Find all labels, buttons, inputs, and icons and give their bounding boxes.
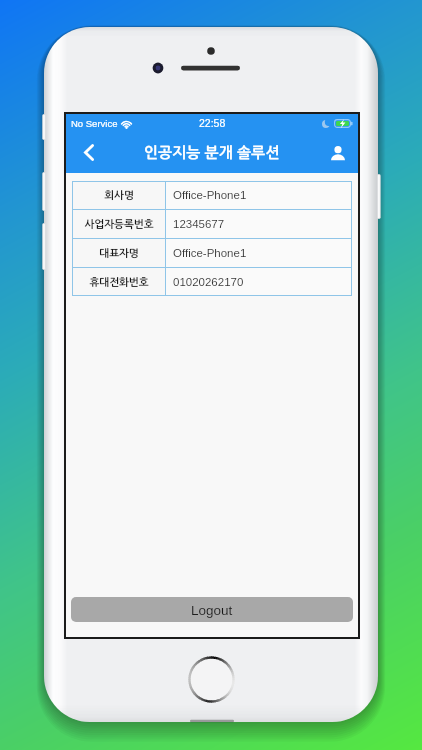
staticText: Office-Phone1 — [173, 247, 247, 260]
staticText: 회사명 — [104, 190, 134, 200]
staticText: 12345677 — [173, 218, 225, 231]
button[interactable]: Back — [66, 132, 104, 173]
staticText: 인공지능 분개 솔루션 — [144, 145, 280, 160]
staticText: Logout — [191, 603, 233, 618]
staticText: 휴대전화번호 — [89, 277, 149, 287]
staticText: 22:58 — [199, 117, 226, 129]
button[interactable]: 대표자명 — [72, 239, 352, 267]
button[interactable]: 회사명 — [72, 181, 352, 209]
staticText: No Service — [71, 118, 118, 129]
button[interactable]: Profile — [320, 132, 358, 173]
staticText: Office-Phone1 — [173, 189, 247, 202]
staticText: 사업자등록번호 — [84, 219, 154, 229]
staticText: 대표자명 — [99, 248, 139, 258]
button[interactable]: 사업자등록번호 — [72, 210, 352, 238]
button[interactable]: 휴대전화번호 — [72, 268, 352, 296]
staticText: 01020262170 — [173, 276, 244, 289]
button[interactable]: Logout — [71, 597, 353, 622]
